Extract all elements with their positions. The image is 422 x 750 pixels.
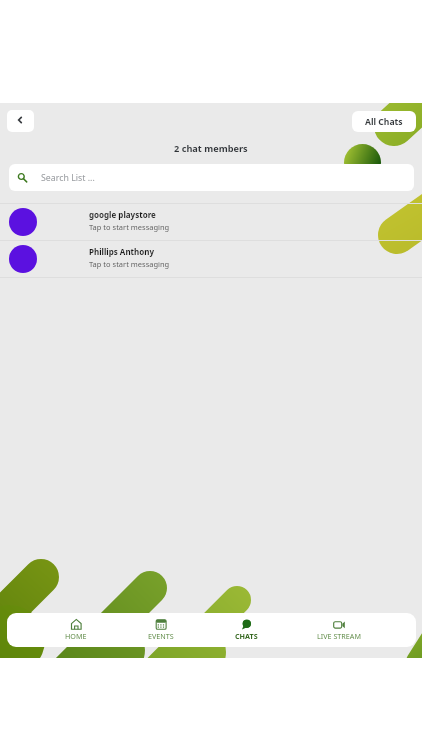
- button[interactable]: All Chats: [352, 111, 416, 132]
- staticText: Search List ...: [41, 172, 95, 184]
- staticText: Tap to start messaging: [89, 222, 170, 232]
- staticText: HOME: [65, 631, 87, 641]
- staticText: All Chats: [365, 116, 403, 128]
- button[interactable]: CHATS: [204, 613, 288, 647]
- staticText: 2 chat members: [174, 142, 248, 155]
- staticText: CHATS: [235, 631, 258, 641]
- staticText: google playstore: [89, 209, 156, 220]
- button[interactable]: Back: [7, 110, 34, 132]
- staticText: Phillips Anthony: [89, 246, 155, 257]
- button[interactable]: Phillips Anthony: [0, 240, 422, 277]
- staticText: LIVE STREAM: [317, 631, 361, 641]
- staticText: EVENTS: [148, 631, 174, 641]
- button[interactable]: google playstore: [0, 203, 422, 240]
- button[interactable]: EVENTS: [119, 613, 203, 647]
- button[interactable]: LIVE STREAM: [297, 613, 381, 647]
- button[interactable]: HOME: [34, 613, 118, 647]
- button[interactable]: Search List ...: [9, 164, 414, 191]
- staticText: Tap to start messaging: [89, 259, 170, 269]
